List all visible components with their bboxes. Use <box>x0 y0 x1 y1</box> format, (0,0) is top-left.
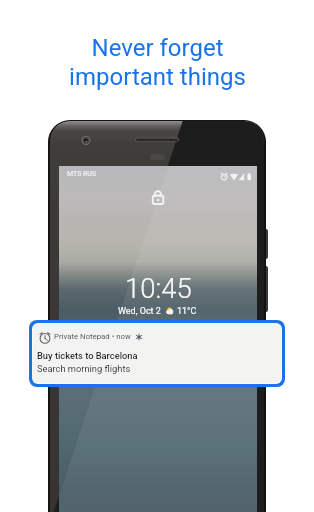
staticText: Buy tickets to Barcelona <box>37 350 138 361</box>
staticText: 10:45 <box>125 272 192 304</box>
staticText: Search morning flights <box>37 363 131 374</box>
button[interactable]: Expand notification <box>135 333 143 341</box>
staticText: 11°C <box>177 306 197 317</box>
button[interactable]: Private Notepad • now <box>33 324 281 383</box>
staticText: Private Notepad • now <box>54 332 131 341</box>
staticText: Wed, Oct 2 <box>118 306 161 317</box>
staticText: MTS RUS <box>67 170 97 178</box>
staticText: Never forget important things <box>69 34 246 91</box>
